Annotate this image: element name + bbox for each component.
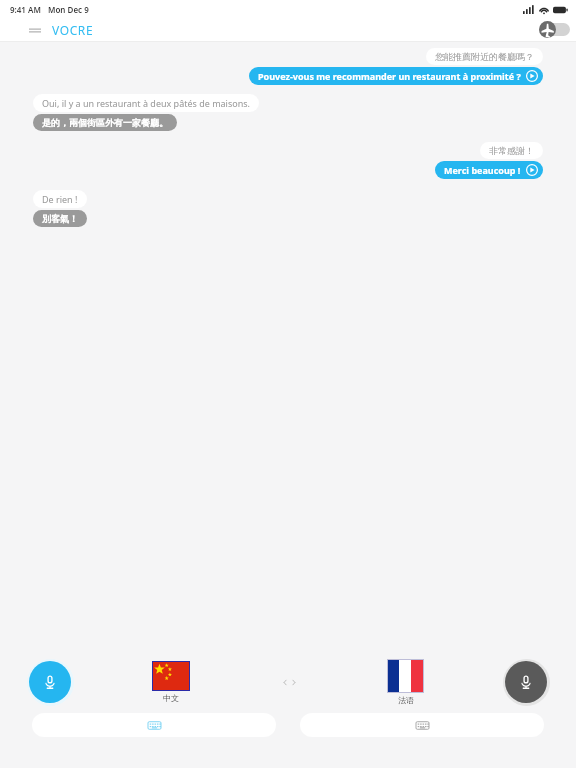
other: Open keyboard (416, 721, 429, 730)
staticText: De rien ! (42, 193, 78, 205)
staticText: VOCRE (52, 22, 94, 38)
button[interactable]: Menu (26, 24, 44, 37)
staticText: 法语 (398, 695, 414, 705)
button[interactable]: 是的，兩個街區外有一家餐廳。 (33, 114, 177, 131)
button[interactable]: 法语 (387, 659, 424, 705)
staticText: 別客氣！ (42, 213, 78, 224)
staticText: 是的，兩個街區外有一家餐廳。 (42, 117, 168, 128)
button[interactable]: 非常感謝！ (480, 142, 543, 159)
staticText: 9:41 AM (10, 4, 41, 15)
staticText: 非常感謝！ (489, 145, 534, 156)
button[interactable]: Oui, il y a un restaurant à deux pâtés d… (33, 94, 259, 112)
button[interactable]: Airplane mode toggle (539, 21, 570, 38)
button[interactable]: 中文 (152, 661, 190, 703)
button[interactable]: 您能推薦附近的餐廳嗎？ (426, 48, 543, 65)
other: Open keyboard (148, 721, 161, 730)
button[interactable]: Merci beaucoup ! (435, 161, 543, 179)
staticText: Oui, il y a un restaurant à deux pâtés d… (42, 97, 250, 109)
staticText: Pouvez-vous me recommander un restaurant… (258, 70, 521, 82)
staticText: 您能推薦附近的餐廳嗎？ (435, 51, 534, 62)
other: Play translation (526, 164, 538, 176)
staticText: 中文 (163, 693, 179, 703)
button[interactable]: 別客氣！ (33, 210, 87, 227)
button[interactable]: Swap languages (277, 674, 302, 691)
staticText: Mon Dec 9 (48, 4, 89, 15)
button[interactable]: De rien ! (33, 190, 87, 208)
button[interactable]: Open keyboard (300, 713, 544, 737)
button[interactable]: Pouvez-vous me recommander un restaurant… (249, 67, 543, 85)
button[interactable]: Record Chinese (26, 658, 74, 706)
staticText: Merci beaucoup ! (444, 164, 521, 176)
button[interactable]: Record French (502, 658, 550, 706)
button[interactable]: VOCRE (52, 22, 94, 38)
other: Play translation (526, 70, 538, 82)
button[interactable]: Open keyboard (32, 713, 276, 737)
